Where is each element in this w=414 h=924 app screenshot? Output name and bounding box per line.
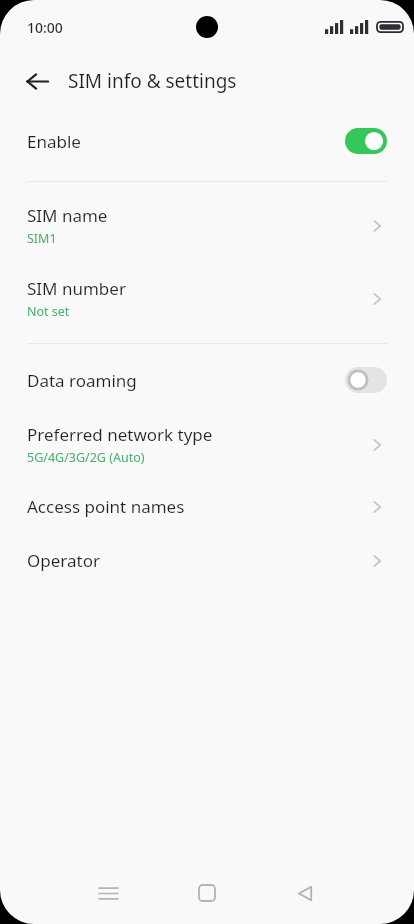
button[interactable]: Enable bbox=[0, 122, 414, 160]
staticText: Access point names bbox=[27, 495, 185, 518]
staticText: SIM number bbox=[27, 277, 126, 300]
button[interactable]: Preferred network type bbox=[0, 420, 414, 469]
button[interactable]: Back bbox=[284, 872, 326, 914]
button[interactable]: Recent apps bbox=[87, 872, 129, 914]
button[interactable]: Data roaming bbox=[0, 361, 414, 399]
staticText: SIM name bbox=[27, 204, 108, 227]
staticText: Not set bbox=[27, 303, 70, 320]
button[interactable]: Operator bbox=[0, 546, 414, 575]
staticText: Data roaming bbox=[27, 369, 345, 392]
button[interactable]: Access point names bbox=[0, 492, 414, 521]
staticText: 5G/4G/3G/2G (Auto) bbox=[27, 449, 145, 466]
button[interactable]: Back bbox=[20, 64, 54, 98]
staticText: 10:00 bbox=[27, 18, 63, 37]
button[interactable]: SIM name bbox=[0, 201, 414, 250]
staticText: Enable bbox=[27, 130, 345, 153]
staticText: Preferred network type bbox=[27, 423, 213, 446]
button[interactable]: Home bbox=[186, 872, 228, 914]
staticText: Operator bbox=[27, 549, 100, 572]
staticText: SIM1 bbox=[27, 230, 57, 247]
button[interactable]: SIM number bbox=[0, 274, 414, 323]
staticText: SIM info & settings bbox=[68, 68, 237, 94]
